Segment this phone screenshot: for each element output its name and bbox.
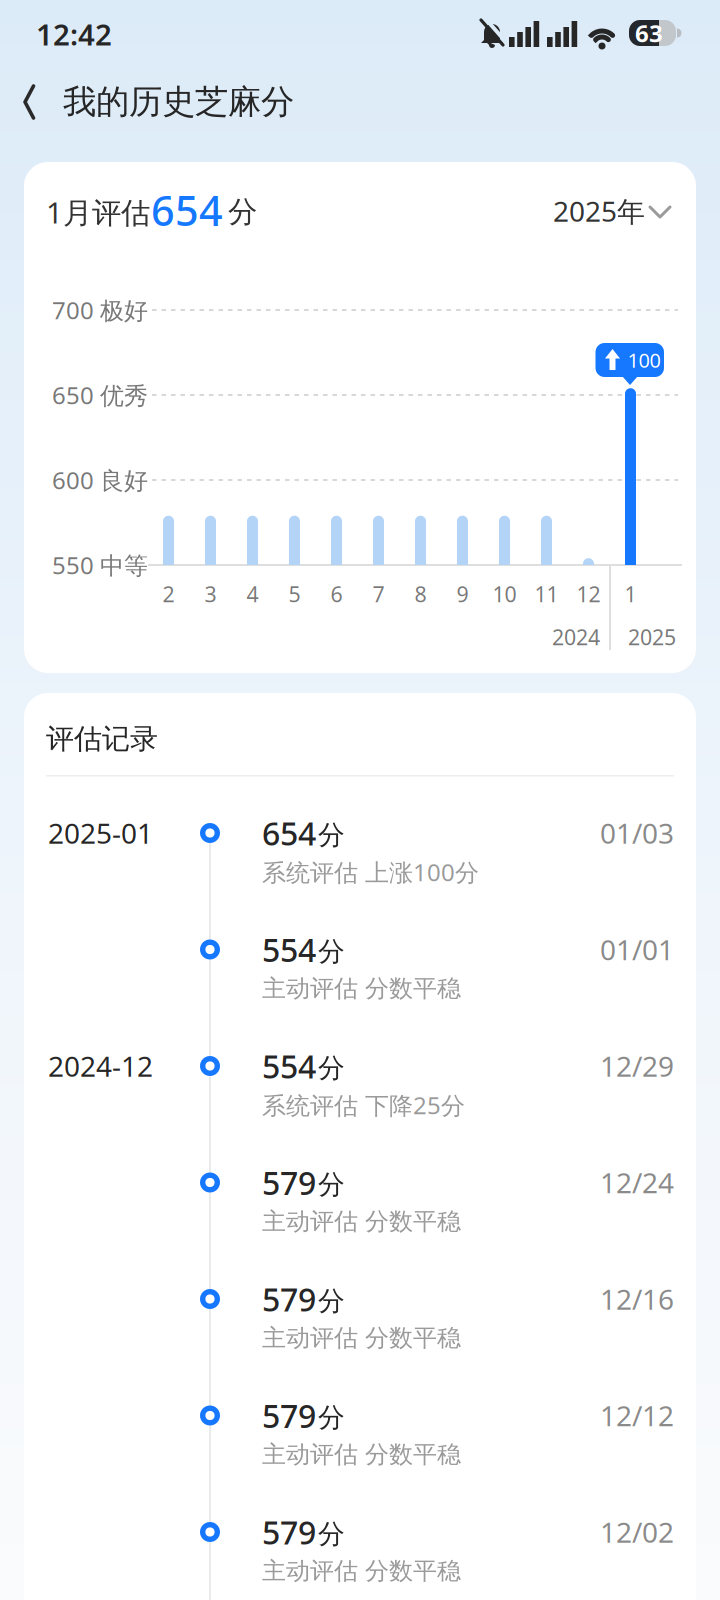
staticText: 分 [318, 1401, 345, 1434]
staticText: 100 [627, 347, 660, 373]
staticText: 63 [635, 17, 663, 49]
staticText: 2024-12 [48, 1047, 153, 1085]
staticText: 550 中等 [52, 549, 148, 581]
button[interactable]: 554 [24, 907, 696, 1021]
staticText: 579 [262, 1161, 316, 1204]
staticText: 600 良好 [52, 464, 148, 496]
staticText: 12:42 [36, 14, 112, 53]
button[interactable]: 579 [24, 1373, 696, 1487]
staticText: 12 [576, 580, 600, 608]
button[interactable]: 579 [24, 1140, 696, 1254]
staticText: 3 [204, 580, 216, 608]
staticText: 分 [318, 1285, 345, 1317]
staticText: 5 [288, 580, 300, 608]
staticText: 11 [534, 580, 558, 608]
button[interactable]: 579 [24, 1490, 696, 1600]
staticText: 12/16 [600, 1280, 674, 1318]
staticText: 主动评估 分数平稳 [262, 1556, 461, 1586]
staticText: 4 [246, 580, 258, 608]
staticText: 01/03 [600, 814, 674, 852]
button[interactable] [16, 78, 60, 126]
staticText: 12/02 [600, 1513, 674, 1551]
button[interactable]: 579 [24, 1257, 696, 1371]
staticText: 10 [492, 580, 516, 608]
staticText: 主动评估 分数平稳 [262, 1440, 461, 1469]
staticText: 654 [262, 812, 316, 854]
staticText: 12/29 [600, 1047, 674, 1085]
staticText: 主动评估 分数平稳 [262, 974, 461, 1003]
button[interactable]: 2025年 [552, 192, 680, 236]
staticText: 6 [330, 580, 342, 608]
staticText: 分 [318, 1518, 345, 1550]
staticText: 主动评估 分数平稳 [262, 1323, 461, 1353]
staticText: 554 [262, 1045, 316, 1087]
staticText: 9 [456, 580, 468, 608]
button[interactable]: 2025-01 [24, 791, 696, 905]
staticText: 2025年 [553, 192, 645, 230]
staticText: 2025 [628, 623, 676, 651]
staticText: 分 [318, 1168, 345, 1201]
staticText: 1月评估 [46, 192, 150, 231]
staticText: 579 [262, 1394, 316, 1437]
staticText: 我的历史芝麻分 [63, 81, 294, 122]
staticText: 12/24 [600, 1164, 674, 1201]
staticText: 主动评估 分数平稳 [262, 1207, 461, 1236]
staticText: 系统评估 上涨100分 [262, 856, 479, 888]
staticText: 评估记录 [46, 722, 158, 756]
staticText: 01/01 [600, 931, 674, 968]
staticText: 12/12 [600, 1397, 674, 1434]
button[interactable]: 2024-12 [24, 1024, 696, 1138]
staticText: 579 [262, 1511, 316, 1553]
staticText: 2024 [552, 623, 600, 651]
staticText: 2 [162, 580, 174, 608]
staticText: 650 优秀 [52, 379, 148, 411]
staticText: 579 [262, 1278, 316, 1320]
staticText: 分 [318, 819, 345, 851]
staticText: 654 [151, 183, 223, 237]
staticText: 分 [228, 194, 257, 230]
staticText: 分 [318, 1052, 345, 1084]
staticText: 7 [372, 580, 384, 608]
staticText: 系统评估 下降25分 [262, 1089, 465, 1121]
staticText: 700 极好 [52, 294, 148, 326]
staticText: 8 [414, 580, 426, 608]
staticText: 分 [318, 935, 345, 968]
staticText: 2025-01 [48, 814, 153, 852]
staticText: 1 [624, 580, 636, 608]
staticText: 554 [262, 928, 316, 971]
